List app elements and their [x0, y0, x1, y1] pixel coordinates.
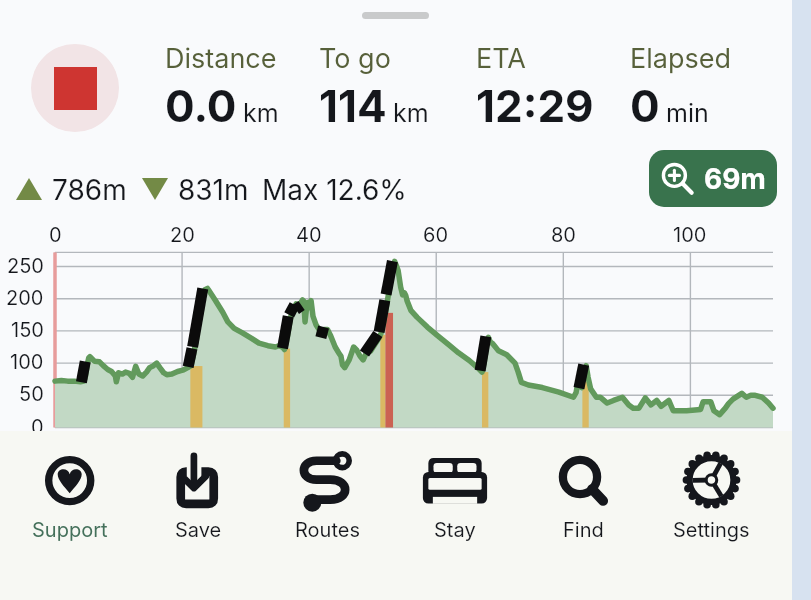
staticText: Routes [295, 518, 360, 542]
staticText: 150 [11, 318, 44, 342]
button[interactable]: Settings [647, 449, 775, 561]
staticText: 250 [7, 254, 44, 278]
staticText: 786m [52, 173, 127, 207]
staticText: 0 [49, 223, 62, 247]
staticText: Elapsed [630, 42, 731, 75]
staticText: Find [563, 518, 604, 542]
button[interactable]: Find [519, 449, 647, 561]
staticText: 0.0 [165, 79, 237, 132]
staticText: 69m [704, 162, 766, 196]
staticText: 100 [10, 350, 44, 374]
staticText: 40 [296, 223, 322, 247]
staticText: 0 [31, 415, 44, 439]
staticText: Stay [434, 518, 476, 542]
button[interactable]: 69m [649, 150, 777, 207]
staticText: 20 [170, 223, 195, 247]
staticText: 831m [178, 173, 249, 207]
button[interactable]: Support [5, 449, 134, 561]
staticText: 200 [6, 286, 44, 310]
staticText: km [393, 98, 429, 128]
staticText: Support [32, 518, 108, 542]
staticText: 60 [423, 223, 449, 247]
staticText: 12:29 [476, 79, 594, 132]
staticText: 50 [19, 382, 44, 406]
button[interactable]: Stop ride [31, 44, 119, 132]
staticText: 80 [551, 223, 576, 247]
button[interactable]: Routes [263, 449, 391, 561]
button[interactable]: Save [134, 449, 263, 561]
staticText: ETA [476, 42, 526, 75]
staticText: Max 12.6% [262, 173, 407, 207]
staticText: 0 [630, 79, 660, 132]
staticText: 114 [319, 79, 387, 132]
staticText: km [243, 98, 279, 128]
staticText: Distance [165, 42, 277, 75]
staticText: To go [319, 42, 391, 75]
staticText: 100 [673, 223, 707, 247]
staticText: Settings [673, 518, 750, 542]
staticText: Save [175, 518, 222, 542]
button[interactable]: Stay [391, 449, 519, 561]
staticText: min [666, 98, 709, 128]
